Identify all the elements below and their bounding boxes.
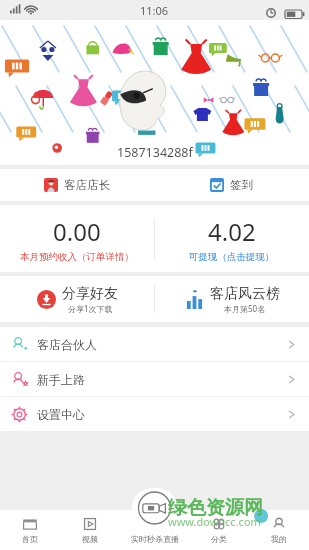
- button[interactable]: 客店合伙人: [0, 327, 309, 361]
- staticText: 本月第50名: [224, 303, 266, 314]
- staticText: 视频: [82, 534, 98, 544]
- staticText: 分享好友: [62, 285, 118, 303]
- staticText: 0.00: [53, 215, 101, 248]
- button[interactable]: 客店风云榜: [155, 276, 309, 322]
- staticText: 签到: [230, 178, 253, 192]
- staticText: 客店合伙人: [37, 337, 97, 352]
- button[interactable]: 签到: [154, 169, 309, 201]
- staticText: 设置中心: [37, 407, 85, 422]
- staticText: 本月预约收入（订单详情）: [20, 251, 134, 263]
- staticText: 4.02: [208, 215, 256, 248]
- button[interactable]: 分享好友: [0, 276, 154, 322]
- staticText: 11:06: [140, 3, 169, 18]
- staticText: 我的: [271, 534, 287, 544]
- button[interactable]: 新手上路: [0, 362, 309, 396]
- button[interactable]: 我的: [249, 510, 309, 550]
- button[interactable]: 分类: [189, 510, 249, 550]
- button[interactable]: 实时秒杀直播: [132, 488, 177, 528]
- button[interactable]: 0.00: [0, 205, 154, 272]
- button[interactable]: 视频: [60, 510, 120, 550]
- staticText: 首页: [22, 534, 38, 544]
- staticText: www.downcc.com: [168, 514, 261, 529]
- button[interactable]: 4.02: [155, 205, 309, 272]
- staticText: 实时秒杀直播: [131, 534, 179, 544]
- button[interactable]: 设置中心: [0, 397, 309, 431]
- staticText: 分类: [211, 534, 227, 544]
- staticText: 绿色资源网: [168, 496, 263, 520]
- staticText: 客店风云榜: [210, 285, 280, 303]
- staticText: 1587134288f: [117, 144, 193, 161]
- staticText: 新手上路: [37, 372, 85, 387]
- staticText: 客店店长: [64, 178, 110, 192]
- button[interactable]: 首页: [0, 510, 60, 550]
- staticText: 可提现（点击提现）: [189, 251, 275, 263]
- button[interactable]: 客店店长: [0, 169, 154, 201]
- button[interactable]: 实时秒杀直播: [120, 510, 189, 550]
- staticText: 分享1次下载: [68, 303, 113, 314]
